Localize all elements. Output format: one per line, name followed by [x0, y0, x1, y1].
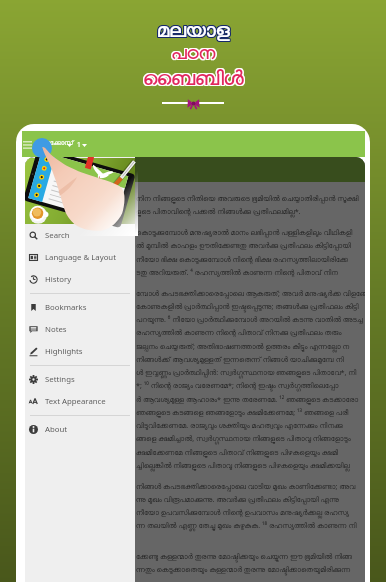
staticText: ളുടെ പിതാവിന്റെ പക്കൽ നിങ്ങൾക്കു പ്രതിഫല…	[136, 206, 301, 216]
staticText: മ്പോൾ കപടഭക്തിക്കാരെപ്പോലെ ആകരുത്; അവർ മ…	[136, 288, 365, 298]
button[interactable]: Notes	[25, 318, 135, 340]
staticText: ബൈബിൾ	[143, 69, 244, 89]
staticText: Bookmarks	[45, 302, 87, 313]
button[interactable]: Settings	[25, 368, 135, 390]
button[interactable]: Open navigation drawer	[23, 141, 32, 149]
button[interactable]: Bookmarks	[25, 296, 135, 318]
staticText: പഠന	[172, 45, 217, 63]
staticText: ന്നു മുഖം വിരൂപമാക്കുന്നു. അവർക്കു പ്രതി…	[136, 494, 340, 504]
staticText: ജല്പനം ചെയ്യരുത്; അതിഭാഷണത്താൽ ഉത്തരം കി…	[136, 341, 350, 351]
staticText: Notes	[45, 324, 67, 335]
staticText: ടതു അറിയരുത്. ⁴ രഹസ്യത്തിൽ കാണുന്ന നിന്റ…	[136, 267, 338, 277]
staticText: പഠന	[171, 46, 216, 64]
staticText: പറയുന്നു. ⁶ നീയോ പ്രാർത്ഥിക്കുമ്പോൾ അറയി…	[136, 314, 363, 324]
staticText: Text Appearance	[45, 396, 106, 407]
staticText: നീയോ ഭിക്ഷ കൊടുക്കുമ്പോൾ നിന്റെ ഭിക്ഷ രഹ…	[136, 254, 349, 264]
staticText: ന്നതും കെടുക്കാതെയും കള്ളന്മാർ തുരന്നു മ…	[136, 564, 351, 574]
staticText: മലയാള	[157, 22, 230, 42]
staticText: മലയാള	[157, 21, 230, 41]
staticText: *; ¹⁰ നിന്റെ രാജ്യം വരേണമേ*; നിന്റെ ഇഷ്ട…	[136, 380, 339, 390]
staticText: ൾ ഇവ്വണ്ണം പ്രാർത്ഥിപ്പിൻ: സ്വർഗ്ഗസ്ഥനായ…	[136, 367, 357, 377]
button[interactable]: History	[25, 268, 135, 290]
staticText: മലയാള	[158, 22, 231, 42]
staticText: ബൈബിൾ	[142, 68, 243, 88]
staticText: ബൈബിൾ	[144, 68, 245, 88]
staticText: ബൈബിൾ	[144, 69, 245, 89]
staticText: ർ ആവശ്യമുള്ള ആഹാരം* ഇന്നു തരേണമേ. ¹² ഞങ്…	[136, 394, 359, 404]
staticText: ബൈബിൾ	[142, 69, 243, 89]
staticText: ബൈബിൾ	[144, 70, 245, 90]
staticText: നിങ്ങൾക്ക് ആവശ്യമുള്ളത് ഇന്നതെന്ന് നിങ്ങ…	[136, 354, 344, 364]
button[interactable]: Highlights	[25, 340, 135, 362]
staticText: മലയാള	[158, 21, 231, 41]
staticText: നീയോ ഉപവസിക്കുമ്പോൾ നിന്റെ ഉപവാസം മനുഷ്യ…	[136, 507, 350, 517]
staticText: History	[45, 274, 72, 285]
staticText: മലയാള	[156, 21, 229, 41]
button[interactable]: Language & Layout	[25, 246, 135, 268]
staticText: ച്ചില്ലെങ്കിൽ നിങ്ങളുടെ പിതാവു നിങ്ങളുടെ…	[136, 460, 350, 470]
button[interactable]: About	[25, 418, 135, 440]
staticText: മലയാള	[156, 22, 229, 42]
staticText: ങ്ങളെ ക്ഷമിച്ചാൽ, സ്വർഗ്ഗസ്ഥനായ നിങ്ങളുട…	[136, 433, 351, 443]
staticText: Language & Layout	[45, 252, 117, 263]
button[interactable]: Search	[25, 224, 135, 246]
staticText: വിടുവിക്കേണമേ. രാജ്യവും ശക്തിയും മഹത്വവു…	[136, 420, 343, 430]
staticText: മലയാള	[158, 20, 231, 40]
staticText: പഠന	[172, 46, 217, 64]
staticText: ബൈബിൾ	[143, 70, 244, 90]
button[interactable]: Text Appearance	[25, 390, 135, 412]
staticText: ബൈബിൾ	[143, 68, 244, 88]
staticText: പഠന	[172, 44, 217, 62]
staticText: ബൈബിൾ	[142, 70, 243, 90]
staticText: ഞങ്ങളുടെ കടങ്ങളെ ഞങ്ങളോടും ക്ഷമിക്കേണമേ;…	[136, 407, 349, 417]
staticText: ൽ മുമ്പിൽ കാഹളം ഊതിക്കേണ്ടതു അവർക്കു പ്ര…	[136, 240, 351, 250]
staticText: Highlights	[45, 346, 83, 357]
staticText: നിങ്ങൾ കപടഭക്തിക്കാരെപ്പോലെ വാടിയ മുഖം ക…	[136, 481, 356, 491]
staticText: ക്ഷമിക്കേണമേ നിങ്ങളുടെ പിതാവ് നിങ്ങളുടെ …	[136, 447, 339, 457]
staticText: ന്ന തലയിൽ എണ്ണ തേച്ചു മുഖം കഴുകുക. ¹⁸ രഹ…	[136, 520, 357, 530]
staticText: മലയാള	[157, 20, 230, 40]
staticText: പഠന	[170, 45, 215, 63]
staticText: പഠന	[170, 46, 215, 64]
staticText: പഠന	[170, 44, 215, 62]
staticText: കോണുകളിൽ പ്രാർത്ഥിപ്പാൻ ഇഷ്ടപ്പെടുന്നു; …	[136, 301, 359, 311]
staticText: 1	[77, 140, 81, 149]
staticText: ക്കേണ്ടു കള്ളന്മാർ തുരന്നു മോഷ്ടിക്കയും …	[136, 551, 353, 561]
staticText: നിന നിങ്ങളുടെ നീതിയെ അവരുടെ ഭൂമിയിൽ ചെയ്…	[136, 193, 359, 203]
staticText: About	[45, 424, 68, 435]
staticText: Settings	[45, 374, 75, 385]
staticText: മലയാള	[156, 20, 229, 40]
staticText: പഠന	[171, 44, 216, 62]
staticText: Search	[45, 230, 70, 241]
staticText: കൊടുക്കുമ്പോൾ മനുഷ്യരാൽ മാനം ലഭിപ്പാൻ പള…	[136, 227, 353, 237]
staticText: പഠന	[171, 45, 216, 63]
staticText: ലൂക്കോസ്	[44, 140, 74, 147]
staticText: രഹസ്യത്തിൽ കാണുന്ന നിന്റെ പിതാവ് നിനക്കു…	[136, 327, 342, 337]
